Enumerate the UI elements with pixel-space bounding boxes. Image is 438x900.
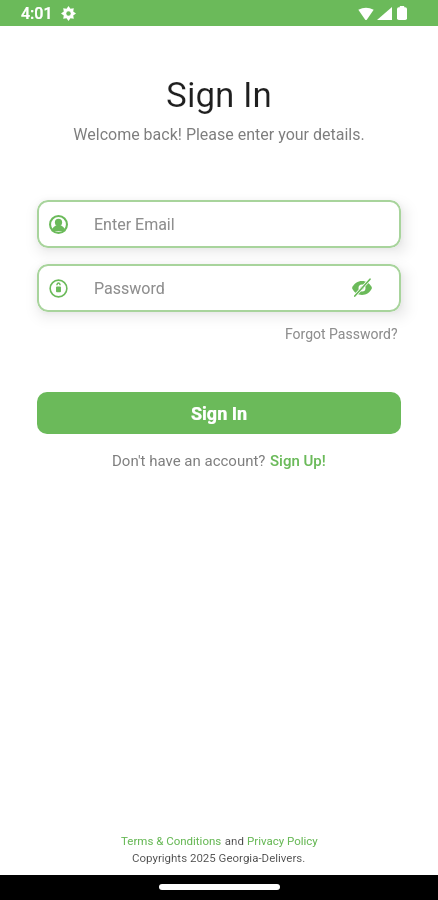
button[interactable]: Forgot Password? — [285, 326, 398, 342]
staticText: Don't have an account? — [112, 452, 270, 470]
staticText: Copyrights 2025 Georgia-Delivers. — [132, 851, 306, 864]
button[interactable]: Enter Email — [37, 200, 401, 248]
staticText: Privacy Policy — [247, 834, 318, 847]
button[interactable]: Show password — [352, 278, 372, 298]
staticText: Welcome back! Please enter your details. — [0, 125, 438, 144]
staticText: 4:01 — [21, 4, 53, 23]
staticText: and — [222, 834, 247, 847]
staticText: Sign In — [0, 75, 438, 116]
staticText: Password — [94, 279, 165, 298]
button[interactable]: Sign In — [37, 392, 401, 434]
staticText: Sign Up! — [270, 452, 326, 470]
button[interactable]: Terms & Conditions — [121, 834, 222, 847]
staticText: Terms & Conditions — [121, 834, 222, 847]
staticText: Forgot Password? — [285, 326, 398, 342]
staticText: Enter Email — [94, 215, 175, 234]
staticText: Sign In — [191, 403, 248, 424]
button[interactable]: Privacy Policy — [247, 834, 318, 847]
button[interactable]: Password — [37, 264, 401, 312]
button[interactable]: Sign Up! — [270, 452, 326, 470]
